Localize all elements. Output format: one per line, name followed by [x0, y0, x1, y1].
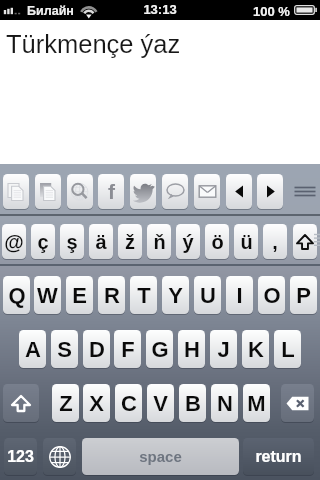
- button[interactable]: Backspace: [281, 384, 314, 423]
- staticText: ş: [66, 231, 78, 253]
- button[interactable]: ö: [205, 224, 229, 261]
- button[interactable]: E: [66, 276, 93, 315]
- staticText: space: [139, 448, 182, 465]
- staticText: J: [217, 337, 230, 362]
- button[interactable]: Email: [194, 174, 220, 210]
- button[interactable]: ž: [118, 224, 142, 261]
- staticText: C: [121, 391, 137, 416]
- button[interactable]: F: [114, 330, 141, 369]
- staticText: ý: [182, 231, 194, 253]
- button[interactable]: Search: [67, 174, 93, 210]
- button[interactable]: O: [258, 276, 285, 315]
- staticText: F: [121, 337, 135, 362]
- button[interactable]: Next: [257, 174, 283, 210]
- staticText: G: [151, 337, 169, 362]
- button[interactable]: C: [115, 384, 142, 423]
- button[interactable]: M: [243, 384, 270, 423]
- button[interactable]: Shift: [3, 384, 39, 423]
- staticText: K: [248, 337, 264, 362]
- button[interactable]: V: [147, 384, 174, 423]
- staticText: O: [263, 283, 281, 308]
- button[interactable]: ü: [234, 224, 258, 261]
- button[interactable]: K: [242, 330, 269, 369]
- staticText: Z: [59, 391, 73, 416]
- button[interactable]: @: [2, 224, 26, 261]
- button[interactable]: Y: [162, 276, 189, 315]
- button[interactable]: Menu: [290, 174, 320, 209]
- staticText: ä: [95, 231, 107, 253]
- button[interactable]: Copy: [35, 174, 61, 210]
- button[interactable]: B: [179, 384, 206, 423]
- button[interactable]: Numbers: [4, 438, 37, 477]
- staticText: H: [184, 337, 200, 362]
- staticText: ž: [125, 231, 135, 253]
- button[interactable]: U: [194, 276, 221, 315]
- button[interactable]: N: [211, 384, 238, 423]
- staticText: N: [217, 391, 233, 416]
- button[interactable]: G: [146, 330, 173, 369]
- button[interactable]: R: [98, 276, 125, 315]
- staticText: V: [153, 391, 168, 416]
- button[interactable]: Q: [3, 276, 30, 315]
- staticText: D: [89, 337, 105, 362]
- button[interactable]: J: [210, 330, 237, 369]
- staticText: U: [200, 283, 216, 308]
- staticText: E: [72, 283, 87, 308]
- button[interactable]: D: [83, 330, 110, 369]
- button[interactable]: L: [274, 330, 301, 369]
- staticText: 123: [7, 448, 34, 466]
- staticText: Y: [168, 283, 183, 308]
- button[interactable]: A: [19, 330, 46, 369]
- staticText: I: [236, 283, 243, 308]
- staticText: ň: [153, 231, 166, 253]
- staticText: S: [57, 337, 72, 362]
- staticText: ,: [272, 231, 278, 253]
- staticText: @: [4, 231, 24, 253]
- button[interactable]: ň: [147, 224, 171, 261]
- button[interactable]: Paste: [3, 174, 29, 210]
- staticText: ç: [37, 231, 49, 253]
- button[interactable]: Change language: [43, 438, 76, 477]
- staticText: M: [247, 391, 266, 416]
- button[interactable]: Twitter: [130, 174, 156, 210]
- button[interactable]: ş: [60, 224, 84, 261]
- staticText: L: [281, 337, 295, 362]
- button[interactable]: X: [83, 384, 110, 423]
- staticText: A: [25, 337, 41, 362]
- staticText: Q: [8, 283, 26, 308]
- button[interactable]: W: [34, 276, 61, 315]
- button[interactable]: space: [82, 438, 239, 477]
- staticText: B: [185, 391, 201, 416]
- staticText: W: [37, 283, 58, 308]
- button[interactable]: Previous: [226, 174, 252, 210]
- button[interactable]: return: [243, 438, 314, 477]
- staticText: T: [137, 283, 151, 308]
- button[interactable]: Shift: [293, 224, 317, 261]
- button[interactable]: ä: [89, 224, 113, 261]
- staticText: Türkmençe ýaz: [6, 30, 181, 58]
- button[interactable]: Messages: [162, 174, 188, 210]
- staticText: ü: [240, 231, 253, 253]
- button[interactable]: T: [130, 276, 157, 315]
- staticText: R: [104, 283, 120, 308]
- staticText: return: [255, 448, 302, 466]
- staticText: Билайн: [27, 4, 74, 18]
- staticText: f: [108, 180, 115, 203]
- button[interactable]: P: [290, 276, 317, 315]
- button[interactable]: Z: [52, 384, 79, 423]
- button[interactable]: H: [178, 330, 205, 369]
- staticText: ö: [211, 231, 224, 253]
- staticText: 13:13: [143, 2, 177, 17]
- button[interactable]: I: [226, 276, 253, 315]
- staticText: P: [296, 283, 311, 308]
- button[interactable]: S: [51, 330, 78, 369]
- button[interactable]: ý: [176, 224, 200, 261]
- button[interactable]: ç: [31, 224, 55, 261]
- staticText: 100 %: [253, 4, 290, 19]
- staticText: X: [89, 391, 104, 416]
- button[interactable]: Facebook: [98, 174, 124, 210]
- button[interactable]: ,: [263, 224, 287, 261]
